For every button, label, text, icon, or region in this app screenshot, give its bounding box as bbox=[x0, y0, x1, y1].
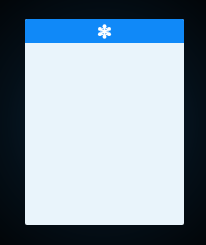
button[interactable]: App header bbox=[25, 19, 184, 43]
button[interactable]: Hub bbox=[97, 24, 112, 39]
